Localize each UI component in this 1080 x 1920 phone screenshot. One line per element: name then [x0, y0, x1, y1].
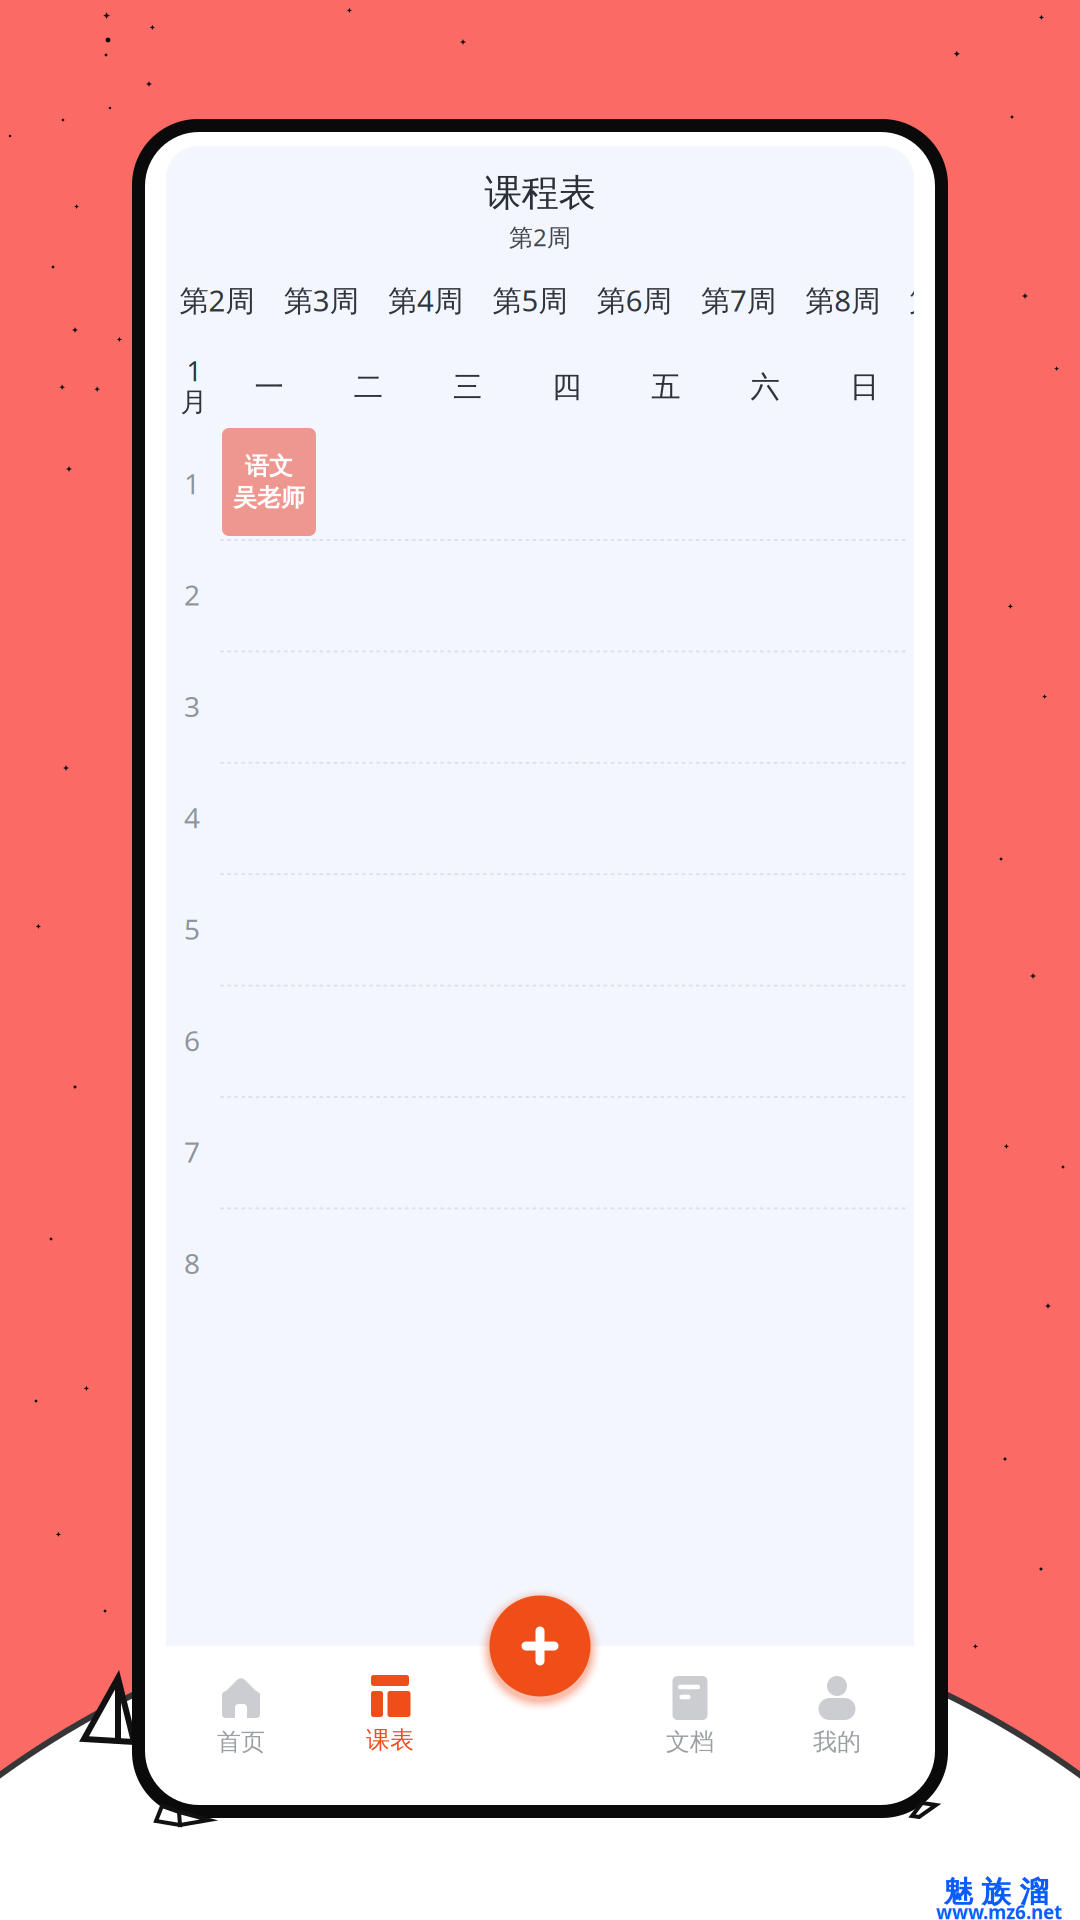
- button[interactable]: 第10周: [999, 264, 1080, 336]
- button[interactable]: 第9周: [895, 264, 1000, 336]
- staticText: 第2周: [509, 221, 571, 253]
- button[interactable]: 语文: [222, 428, 316, 536]
- button[interactable]: 第6周: [582, 264, 687, 336]
- staticText: 吴老师: [233, 483, 305, 512]
- staticText: 第10周: [1005, 280, 1080, 319]
- button[interactable]: 第3周: [269, 264, 374, 336]
- button[interactable]: 课表: [320, 1644, 460, 1774]
- staticText: 4: [184, 799, 200, 836]
- staticText: 1: [186, 353, 201, 389]
- staticText: 第5周: [492, 280, 567, 319]
- staticText: 第4周: [388, 280, 463, 319]
- button[interactable]: 第8周: [790, 264, 895, 336]
- staticText: 日: [850, 369, 879, 405]
- staticText: 六: [750, 369, 779, 405]
- staticText: 五: [651, 369, 680, 405]
- button[interactable]: 首页: [171, 1646, 311, 1776]
- button[interactable]: 第5周: [477, 264, 582, 336]
- staticText: 5: [184, 910, 200, 947]
- staticText: 第7周: [701, 280, 776, 319]
- staticText: 二: [354, 369, 383, 405]
- button[interactable]: 第7周: [686, 264, 791, 336]
- staticText: 第6周: [597, 280, 672, 319]
- staticText: www.mz6.net: [936, 1900, 1062, 1920]
- staticText: 2: [184, 576, 200, 613]
- button[interactable]: 文档: [620, 1646, 760, 1776]
- staticText: 第3周: [284, 280, 359, 319]
- button[interactable]: 我的: [767, 1646, 907, 1776]
- staticText: 语文: [245, 451, 293, 481]
- staticText: 月: [180, 386, 207, 418]
- staticText: 我的: [813, 1727, 861, 1757]
- staticText: 文档: [666, 1727, 714, 1757]
- button[interactable]: 第2周: [164, 264, 269, 336]
- button[interactable]: 添加课程: [489, 1595, 590, 1696]
- staticText: 四: [552, 369, 581, 405]
- staticText: 1: [184, 465, 200, 502]
- staticText: 8: [184, 1244, 200, 1282]
- staticText: 第9周: [910, 280, 985, 319]
- button[interactable]: 第4周: [373, 264, 478, 336]
- staticText: 7: [184, 1133, 200, 1170]
- staticText: 6: [184, 1022, 200, 1059]
- staticText: 第8周: [805, 280, 880, 319]
- staticText: 3: [184, 687, 200, 725]
- staticText: 课程表: [484, 170, 595, 216]
- staticText: 第2周: [179, 280, 254, 319]
- staticText: 三: [453, 369, 482, 405]
- staticText: 课表: [366, 1725, 414, 1755]
- staticText: 首页: [217, 1727, 265, 1757]
- staticText: 魅 族 溜: [943, 1874, 1048, 1910]
- staticText: 一: [254, 369, 283, 405]
